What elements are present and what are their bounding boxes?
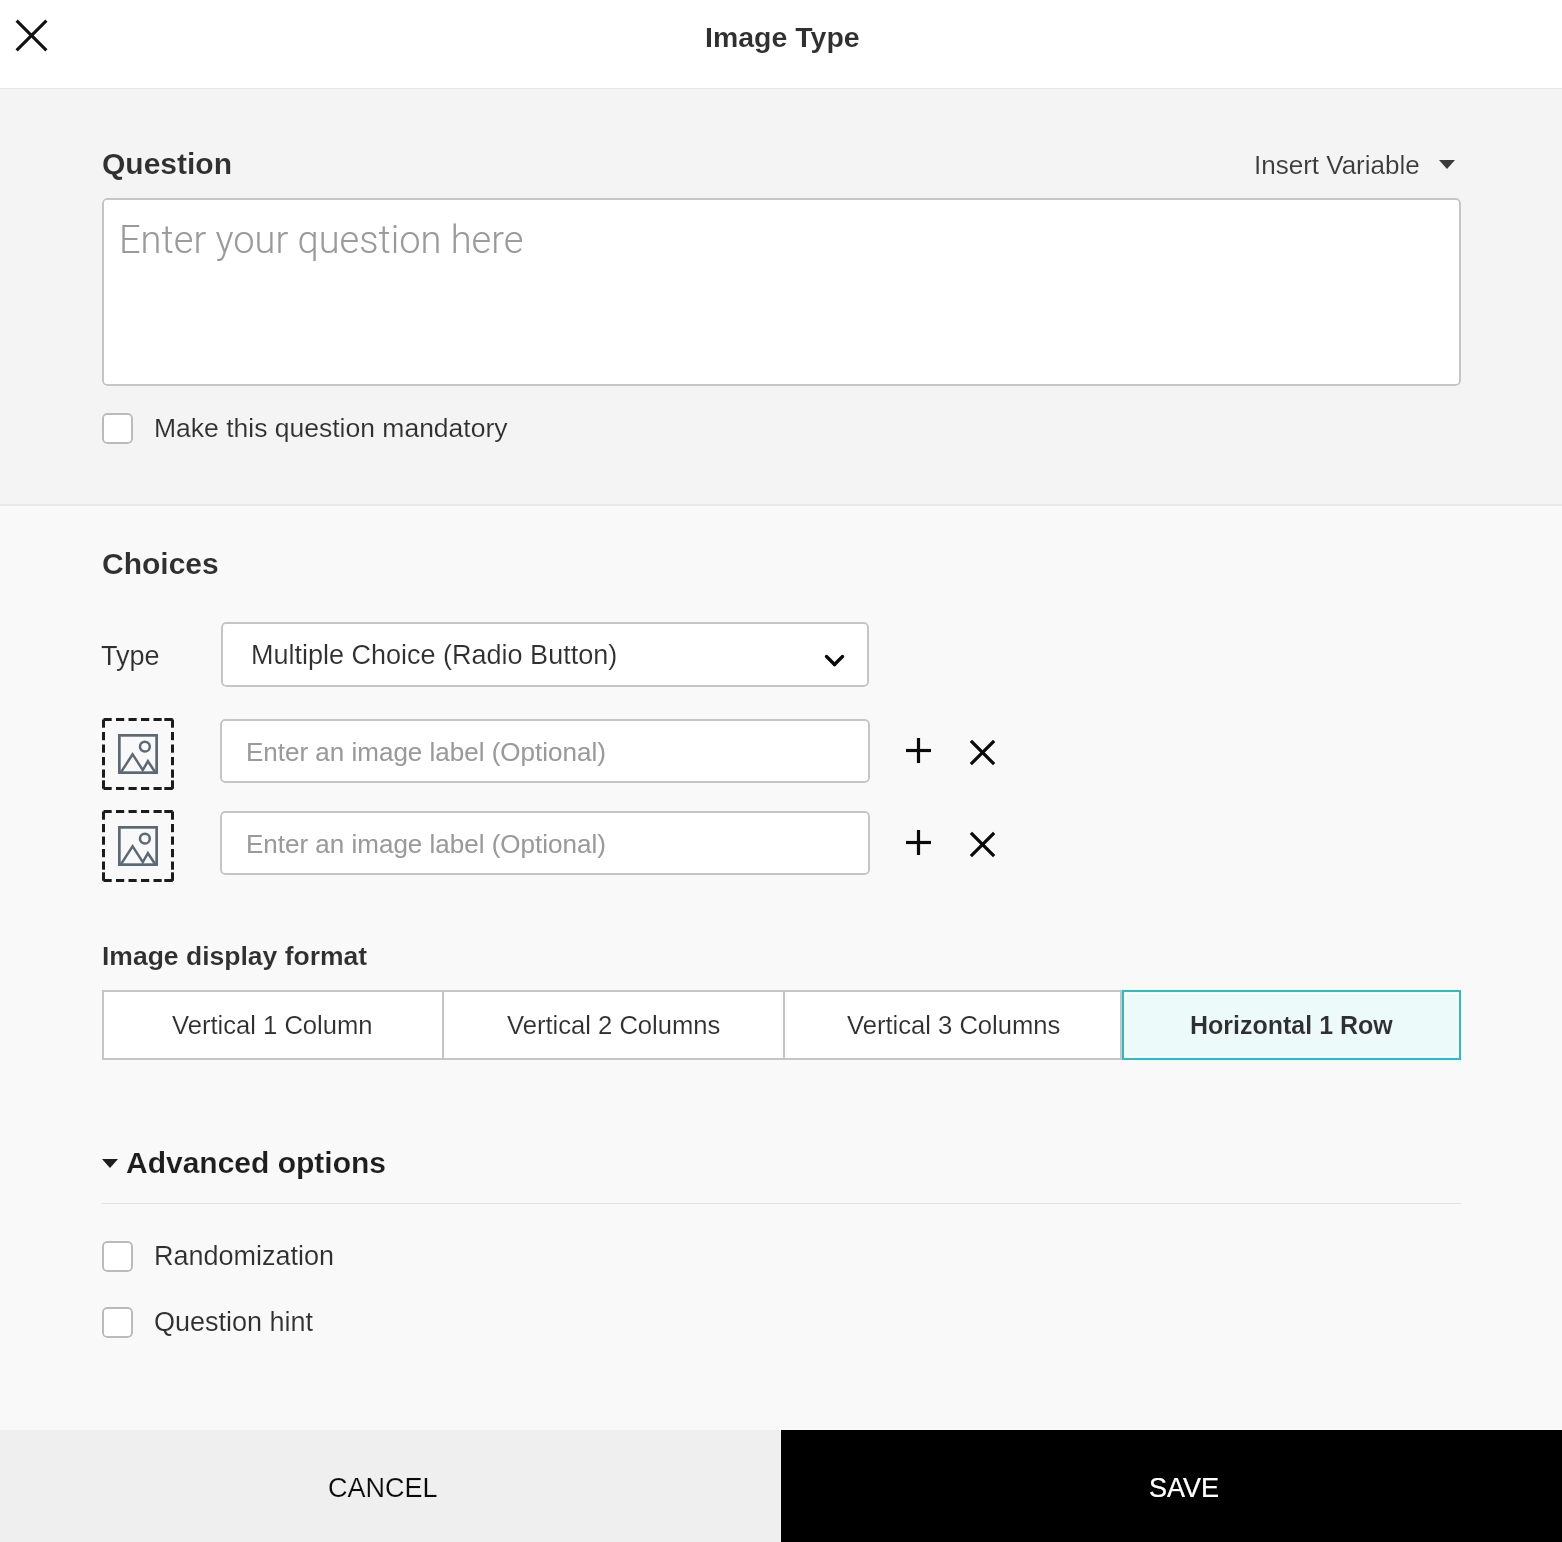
button[interactable]: Add image — [102, 810, 174, 882]
button[interactable]: Add choice — [892, 724, 944, 776]
staticText: Question hint — [154, 1307, 314, 1337]
staticText: Question — [102, 147, 233, 181]
staticText: Advanced options — [126, 1146, 387, 1180]
staticText: Image display format — [102, 941, 368, 971]
staticText: SAVE — [1149, 1473, 1220, 1503]
staticText: Vertical 2 Columns — [507, 1011, 721, 1040]
button[interactable]: Enter your question here — [102, 198, 1461, 386]
button[interactable]: Add image — [102, 718, 174, 790]
staticText: Vertical 1 Column — [172, 1011, 373, 1040]
staticText: Make this question mandatory — [154, 413, 508, 443]
button[interactable]: Question hint — [102, 1298, 314, 1346]
button[interactable]: Vertical 1 Column — [102, 990, 442, 1060]
staticText: Insert Variable — [1254, 150, 1420, 179]
staticText: Randomization — [154, 1241, 335, 1271]
staticText: Horizontal 1 Row — [1190, 1011, 1393, 1039]
staticText: Choices — [102, 547, 219, 581]
button[interactable]: Horizontal 1 Row — [1126, 994, 1457, 1056]
staticText: Enter your question here — [119, 218, 524, 263]
staticText: Multiple Choice (Radio Button) — [251, 640, 618, 670]
button[interactable]: Randomization — [102, 1232, 335, 1280]
button[interactable]: Vertical 2 Columns — [444, 990, 783, 1060]
staticText: CANCEL — [328, 1473, 438, 1503]
button[interactable]: Make this question mandatory — [102, 404, 508, 452]
staticText: Enter an image label (Optional) — [246, 829, 606, 858]
staticText: Vertical 3 Columns — [847, 1011, 1061, 1040]
staticText: Type — [101, 641, 160, 671]
button[interactable]: Multiple Choice (Radio Button) — [221, 622, 869, 687]
button[interactable]: Enter an image label (Optional) — [220, 811, 870, 875]
button[interactable]: CANCEL — [0, 1430, 781, 1542]
button[interactable]: Vertical 3 Columns — [785, 990, 1122, 1060]
button[interactable]: Add choice — [892, 816, 944, 868]
button[interactable]: Remove choice — [956, 818, 1008, 870]
button[interactable]: Close — [0, 3, 64, 68]
button[interactable]: Enter an image label (Optional) — [220, 719, 870, 783]
button[interactable]: SAVE — [781, 1430, 1562, 1542]
button[interactable]: Remove choice — [956, 726, 1008, 778]
staticText: Image Type — [705, 21, 860, 53]
button[interactable]: Advanced options — [102, 1139, 387, 1187]
staticText: Enter an image label (Optional) — [246, 737, 606, 766]
button[interactable]: Insert Variable — [1254, 140, 1455, 188]
